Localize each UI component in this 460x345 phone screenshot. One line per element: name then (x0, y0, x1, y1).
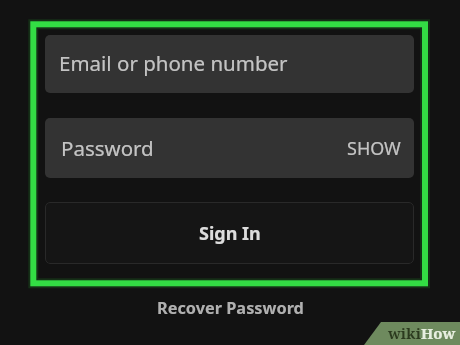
staticText: Sign In (199, 221, 261, 246)
button[interactable]: Sign In (45, 202, 414, 264)
button[interactable]: SHOW (334, 118, 414, 178)
staticText: Email or phone number (59, 49, 288, 77)
staticText: Password (61, 134, 154, 162)
button[interactable]: Recover Password (0, 294, 460, 322)
staticText: How (421, 323, 456, 343)
other: Highlighted sign in area (0, 0, 460, 345)
button[interactable]: Password (45, 118, 414, 178)
staticText: SHOW (347, 136, 401, 161)
staticText: wiki (388, 323, 421, 343)
staticText: Recover Password (157, 297, 304, 319)
button[interactable]: Email or phone number (45, 35, 414, 93)
